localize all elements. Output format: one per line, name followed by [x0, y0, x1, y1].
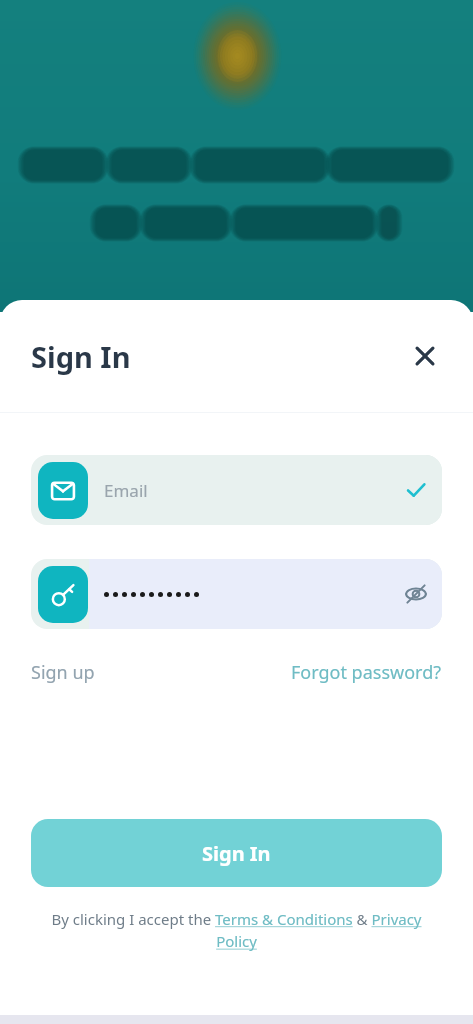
- staticText: Forgot password?: [291, 660, 442, 685]
- staticText: Sign In: [31, 337, 131, 376]
- button[interactable]: Sign up: [31, 656, 95, 689]
- other: Password: [38, 566, 88, 623]
- button[interactable]: Sign In: [31, 819, 442, 887]
- button[interactable]: By clicking I accept the Terms & Conditi…: [40, 909, 433, 952]
- button[interactable]: Email: [31, 455, 442, 525]
- other: Email: [38, 462, 88, 519]
- staticText: By clicking I accept the Terms & Conditi…: [40, 909, 433, 952]
- button[interactable]: Valid: [397, 471, 435, 509]
- button[interactable]: Show password: [397, 575, 435, 613]
- button[interactable]: Close: [405, 336, 445, 376]
- staticText: Sign up: [31, 660, 95, 685]
- button[interactable]: Forgot password?: [291, 656, 442, 689]
- button[interactable]: Password: [31, 559, 442, 629]
- staticText: Sign In: [202, 840, 271, 867]
- staticText: Email: [104, 479, 148, 502]
